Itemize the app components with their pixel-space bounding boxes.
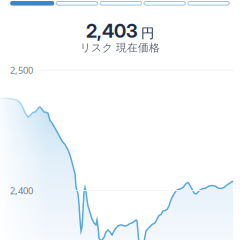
staticText: 2,400 (10, 184, 33, 197)
staticText: リスク 現在価格 (80, 41, 160, 54)
staticText: 2,403 (86, 20, 138, 42)
staticText: 円 (141, 25, 154, 41)
staticText: 2,500 (10, 64, 33, 76)
